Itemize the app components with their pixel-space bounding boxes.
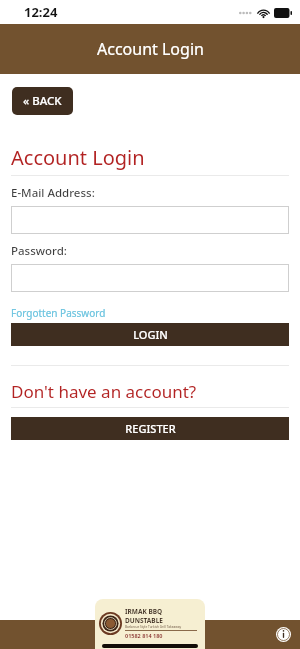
button[interactable]: Information — [274, 625, 292, 643]
staticText: Account Login — [11, 144, 145, 171]
button[interactable] — [11, 206, 289, 234]
staticText: Barbecue Style Turkish Grill Takeaway — [125, 625, 182, 629]
button[interactable]: Forgotten Password — [11, 306, 106, 320]
button[interactable]: « BACK — [12, 87, 73, 115]
staticText: 12:24 — [24, 3, 58, 21]
button[interactable]: LOGIN — [11, 323, 289, 346]
staticText: 01582 814 180 — [125, 632, 197, 639]
staticText: E-Mail Address: — [11, 185, 95, 201]
button[interactable]: IRMAK BBQ DUNSTABLE — [95, 599, 205, 649]
staticText: Don't have an account? — [11, 380, 197, 403]
button[interactable]: REGISTER — [11, 417, 289, 440]
staticText: REGISTER — [125, 421, 176, 436]
staticText: Forgotten Password — [11, 306, 106, 320]
staticText: Password: — [11, 243, 67, 259]
staticText: Account Login — [97, 38, 204, 60]
staticText: IRMAK BBQ DUNSTABLE — [125, 607, 201, 625]
staticText: LOGIN — [133, 327, 168, 342]
staticText: « BACK — [23, 93, 62, 109]
button[interactable] — [11, 264, 289, 292]
